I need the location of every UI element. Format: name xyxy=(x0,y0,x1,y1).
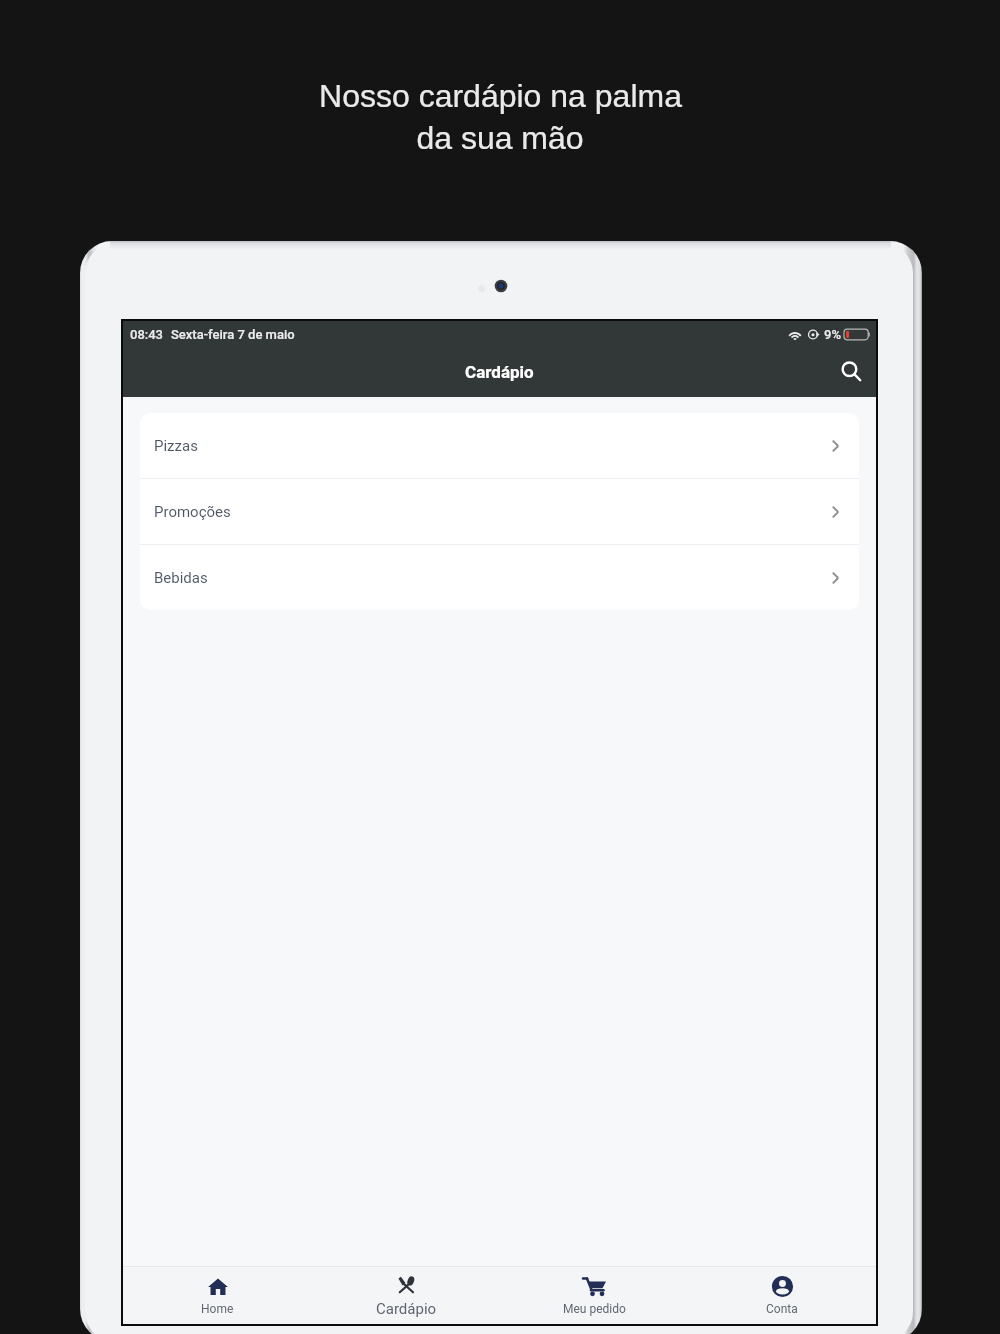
button[interactable]: Conta xyxy=(688,1267,876,1324)
staticText: Cardápio xyxy=(376,1300,437,1318)
staticText: Cardápio xyxy=(465,362,534,382)
staticText: da sua mão xyxy=(416,120,584,156)
button[interactable]: Search xyxy=(833,353,869,389)
button[interactable]: Cardápio xyxy=(312,1267,500,1324)
button[interactable]: Meu pedido xyxy=(500,1267,688,1324)
staticText: Conta xyxy=(766,1302,798,1316)
staticText: Nosso cardápio na palma xyxy=(319,78,682,114)
button[interactable]: Bebidas xyxy=(140,545,859,610)
staticText: 9% xyxy=(824,327,841,342)
staticText: Promoções xyxy=(154,503,231,521)
staticText: Bebidas xyxy=(154,569,208,587)
staticText: Pizzas xyxy=(154,437,198,455)
button[interactable]: Home xyxy=(123,1267,312,1324)
staticText: Home xyxy=(201,1302,234,1316)
button[interactable]: Pizzas xyxy=(140,413,859,478)
staticText: Sexta-feira 7 de maio xyxy=(171,327,295,342)
button[interactable]: Promoções xyxy=(140,479,859,544)
staticText: Meu pedido xyxy=(563,1302,626,1316)
staticText: 08:43 xyxy=(130,327,164,342)
